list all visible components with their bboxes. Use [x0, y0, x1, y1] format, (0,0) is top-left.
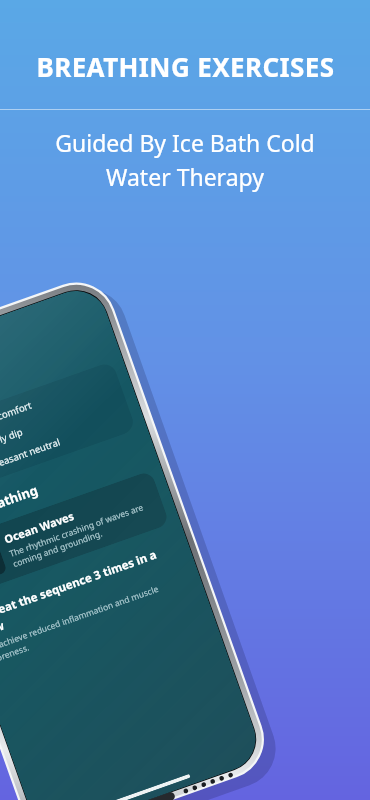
button[interactable]: Ocean Waves: [0, 470, 170, 596]
button[interactable]: 25°C (77°F): [0, 413, 125, 491]
button[interactable]: Breathing exercises app preview: [0, 273, 274, 800]
button[interactable]: 18°C (64°F): [0, 371, 111, 450]
staticText: to achieve reduced inflammation and musc…: [0, 572, 195, 665]
staticText: 4-7-8 Breathing: [0, 481, 41, 531]
staticText: Chilly dip: [0, 425, 25, 451]
staticText: Cool comfort: [0, 399, 33, 430]
staticText: Guided By Ice Bath Cold Water Therapy: [55, 127, 315, 193]
button[interactable]: BREATHING EXERCISES: [0, 49, 370, 84]
staticText: Ocean Waves: [2, 508, 76, 547]
button[interactable]: Guided By Ice Bath Cold Water Therapy: [14, 127, 356, 193]
button[interactable]: 12°C (54°F): [0, 392, 118, 470]
staticText: The rhythmic crashing of waves are comin…: [8, 501, 149, 569]
staticText: BREATHING EXERCISES: [36, 49, 335, 84]
staticText: Pleasant neutral: [0, 435, 62, 472]
staticText: Repeat the sequence 3 times in a row: [0, 539, 186, 640]
